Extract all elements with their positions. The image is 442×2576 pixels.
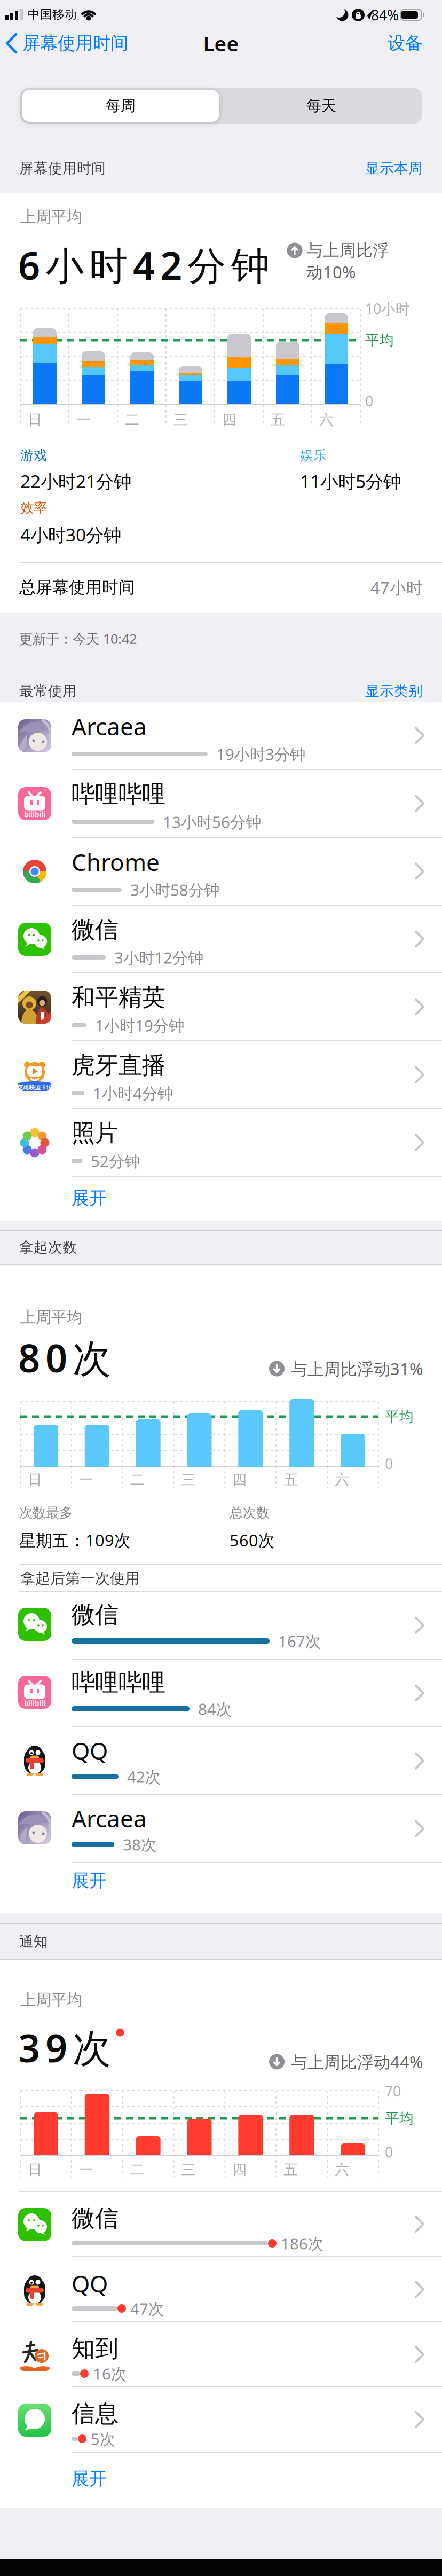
button[interactable]: Arcaea [0,702,442,769]
staticText: 上周平均 [20,1308,82,1327]
button[interactable]: 英雄联盟 S10 [0,1041,442,1109]
staticText: 微信 [72,2204,119,2233]
button[interactable]: 显示本周 [337,152,423,184]
staticText: 47次 [130,2298,164,2319]
staticText: 五 [271,411,285,428]
staticText: 1小时19分钟 [95,1015,184,1036]
staticText: 屏幕使用时间 [22,32,128,54]
staticText: 与上周比浮动44% [291,2051,423,2073]
staticText: 19小时3分钟 [216,744,305,764]
staticText: 四 [232,2161,247,2178]
staticText: 显示本周 [365,159,423,177]
staticText: 展开 [72,1870,107,1892]
staticText: 每周 [106,97,136,115]
button[interactable]: Arcaea [0,1795,442,1863]
staticText: 展开 [72,1187,107,1209]
staticText: Lee [203,30,239,57]
staticText: 22小时21分钟 [20,469,131,493]
staticText: 上周平均 [20,207,82,226]
staticText: 上周平均 [20,1990,82,2009]
staticText: 知到 [72,2334,119,2363]
staticText: 次数最多 [19,1504,73,1521]
staticText: 0 [365,392,373,410]
staticText: 微信 [72,1600,119,1629]
staticText: 186次 [281,2233,323,2254]
staticText: 三 [181,2161,196,2178]
button[interactable]: 每天 [223,90,420,122]
staticText: 39次 [18,2022,111,2073]
staticText: 星期五：109次 [19,1529,131,1551]
staticText: 虎牙直播 [72,1051,165,1080]
staticText: 微信 [72,915,119,944]
staticText: 四 [222,411,236,428]
staticText: 屏幕使用时间 [19,159,106,177]
staticText: 84次 [198,1698,232,1719]
staticText: 照片 [72,1119,119,1148]
staticText: 一 [79,2161,93,2178]
staticText: 16次 [93,2363,127,2384]
staticText: 更新于：今天 10:42 [19,630,137,648]
staticText: 二 [130,2161,145,2178]
staticText: 拿起后第一次使用 [20,1569,140,1588]
staticText: 一 [76,411,91,428]
staticText: 日 [28,1471,42,1488]
staticText: 中国移动 [28,7,77,22]
staticText: QQ [72,2268,108,2299]
staticText: 47小时 [370,577,423,598]
staticText: 设备 [388,32,423,54]
button[interactable]: Chrome [0,837,442,905]
button[interactable]: 返回 屏幕使用时间 [0,20,144,67]
staticText: 平均 [365,331,394,349]
staticText: 信息 [72,2399,119,2428]
staticText: 三 [181,1471,196,1488]
staticText: 10小时 [365,299,410,318]
staticText: bilibili [24,1698,45,1708]
staticText: 一 [79,1471,93,1488]
staticText: 每天 [306,97,336,115]
staticText: 42次 [127,1766,161,1787]
staticText: 拿起次数 [19,1239,77,1256]
staticText: 效率 [20,500,47,516]
staticText: 二 [125,411,139,428]
button[interactable]: 展开 [0,1175,442,1222]
button[interactable]: 知到 [0,2322,442,2387]
button[interactable]: 显示类别 [337,675,423,707]
staticText: 日 [28,2161,42,2178]
staticText: 5次 [91,2428,115,2449]
button[interactable]: 每周 [22,90,219,122]
staticText: 二 [130,1471,145,1488]
staticText: 3小时12分钟 [114,947,203,968]
button[interactable]: 微信 [0,2192,442,2257]
button[interactable]: 照片 [0,1109,442,1176]
staticText: 英雄联盟 S10 [17,1083,52,1091]
button[interactable]: 微信 [0,1591,442,1659]
staticText: 平均 [385,1408,414,1425]
staticText: 3小时58分钟 [130,879,219,900]
staticText: 总次数 [230,1504,270,1521]
staticText: 三 [173,411,188,428]
staticText: 哔哩哔哩 [72,1668,165,1697]
staticText: 哔哩哔哩 [72,780,165,808]
button[interactable]: 微信 [0,905,442,973]
button[interactable]: 和平精英 [0,973,442,1041]
button[interactable]: bilibili [0,769,442,837]
button[interactable]: 展开 [0,2455,442,2502]
staticText: 0 [385,2143,393,2161]
staticText: 167次 [278,1631,321,1651]
staticText: 52分钟 [91,1150,140,1171]
staticText: 70 [385,2082,401,2101]
button[interactable]: QQ [0,2257,442,2322]
staticText: 38次 [123,1834,156,1855]
button[interactable]: 设备 [359,20,423,67]
button[interactable]: QQ [0,1727,442,1795]
staticText: 动10% [306,261,356,283]
staticText: 显示类别 [365,682,423,700]
staticText: 六 [319,411,334,428]
button[interactable]: bilibili [0,1659,442,1727]
staticText: 展开 [72,2468,107,2490]
button[interactable]: 信息 [0,2387,442,2452]
staticText: 与上周比浮动31% [291,1358,423,1379]
button[interactable]: 展开 [0,1857,442,1904]
staticText: 13小时56分钟 [163,811,261,832]
staticText: 与上周比浮 [306,240,389,261]
